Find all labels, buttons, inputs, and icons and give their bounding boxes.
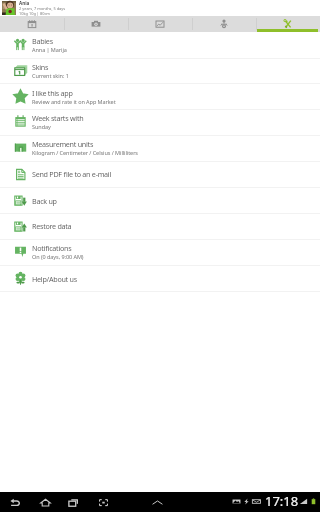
staticText: 17:18 (265, 492, 299, 510)
button[interactable]: Calendar (0, 16, 64, 32)
staticText: On (0 days, 9:00 AM) (32, 253, 84, 260)
staticText: Help/About us (32, 274, 77, 284)
staticText: Back up (32, 196, 57, 206)
button[interactable]: Notifications (0, 239, 320, 264)
button[interactable]: Camera (64, 16, 128, 32)
button[interactable]: Baby (192, 16, 256, 32)
button[interactable]: Recent apps (64, 492, 82, 512)
button[interactable]: Charts (128, 16, 192, 32)
button[interactable]: Restore data (0, 214, 320, 238)
staticText: Kilogram / Centimeter / Celsius / Millil… (32, 149, 138, 156)
staticText: Current skin: 1 (32, 72, 69, 79)
staticText: Send PDF file to an e-mail (32, 169, 112, 179)
button[interactable]: Measurement units (0, 135, 320, 160)
button[interactable]: Settings (256, 16, 320, 32)
staticText: Sunday (32, 123, 51, 130)
button[interactable]: Screenshot (94, 492, 112, 512)
staticText: Review and rate it on App Market (32, 98, 116, 105)
staticText: Skins (32, 62, 49, 72)
staticText: 2 years, 7 months, 5 days (19, 6, 66, 11)
staticText: Babies (32, 36, 53, 46)
button[interactable]: I like this app (0, 84, 320, 108)
button[interactable]: Skins (0, 58, 320, 82)
button[interactable]: Help/About us (0, 266, 320, 291)
staticText: 10kg 10g | 80cm (19, 11, 50, 16)
staticText: Restore data (32, 221, 72, 231)
button[interactable]: Ania (0, 0, 320, 16)
staticText: Ania (19, 0, 30, 6)
button[interactable]: Back up (0, 188, 320, 213)
button[interactable]: Back (6, 492, 24, 512)
staticText: Measurement units (32, 139, 94, 149)
button[interactable]: Week starts with (0, 109, 320, 133)
button[interactable]: Babies (0, 32, 320, 57)
staticText: Week starts with (32, 113, 84, 123)
button[interactable]: Show notifications (148, 492, 166, 512)
button[interactable]: Home (36, 492, 54, 512)
staticText: Notifications (32, 243, 72, 253)
button[interactable]: Send PDF file to an e-mail (0, 162, 320, 186)
staticText: I like this app (32, 88, 73, 98)
staticText: Anna | Marija (32, 46, 67, 53)
